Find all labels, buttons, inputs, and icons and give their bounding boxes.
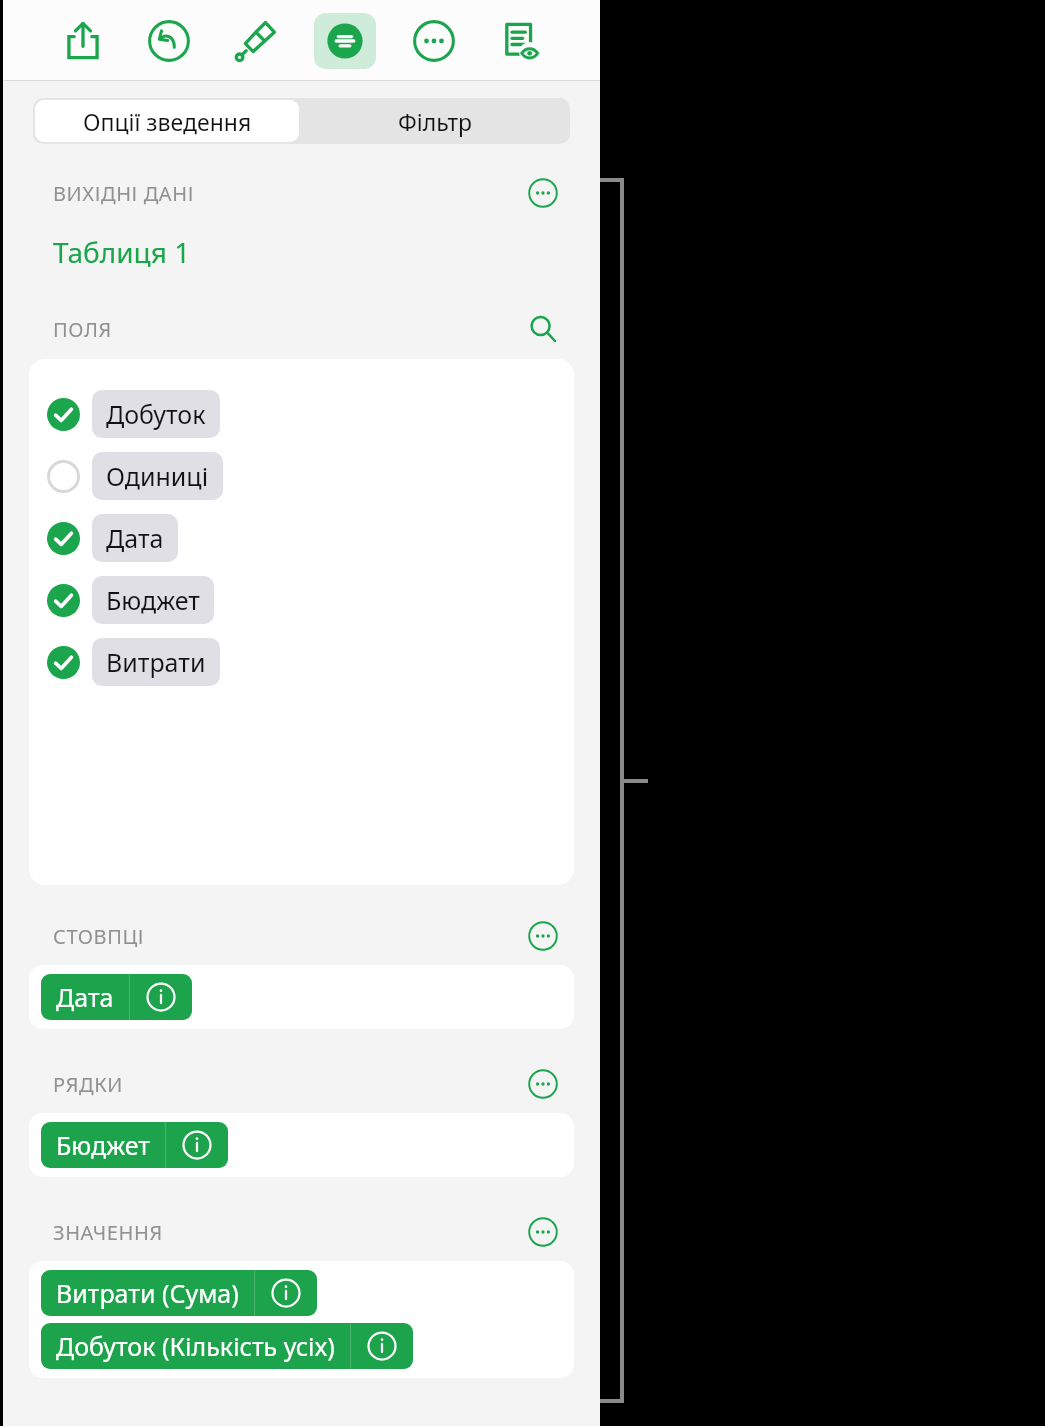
staticText: Дата	[106, 521, 164, 555]
button[interactable]: More options	[526, 176, 560, 210]
button[interactable]: Одиниці	[47, 445, 574, 507]
button[interactable]: Бюджет	[47, 569, 574, 631]
button[interactable]: More options	[526, 1215, 560, 1249]
staticText: Таблиця 1	[53, 233, 191, 271]
button[interactable]: Дата	[41, 974, 192, 1020]
staticText: Одиниці	[106, 459, 209, 493]
staticText: Добуток (Кількість усіх)	[56, 1329, 335, 1363]
staticText: Дата	[56, 980, 114, 1014]
button[interactable]: More options	[526, 919, 560, 953]
button[interactable]: More options	[526, 1067, 560, 1101]
button[interactable]: More	[406, 13, 462, 69]
staticText: ЗНАЧЕННЯ	[53, 1219, 163, 1246]
button[interactable]: Document	[492, 13, 548, 69]
staticText: Добуток	[106, 397, 206, 431]
button[interactable]: Organize	[314, 13, 376, 69]
button[interactable]: Search	[526, 312, 560, 346]
button[interactable]: Опції зведення	[35, 100, 299, 142]
button[interactable]: Format	[227, 13, 283, 69]
button[interactable]: Добуток	[47, 383, 574, 445]
staticText: ВИХІДНІ ДАНІ	[53, 180, 194, 207]
button[interactable]: Витрати (Сума)	[41, 1270, 317, 1316]
button[interactable]: Бюджет	[41, 1122, 228, 1168]
staticText: Опції зведення	[83, 106, 252, 137]
button[interactable]: Share	[55, 13, 111, 69]
staticText: ПОЛЯ	[53, 316, 112, 343]
staticText: Фільтр	[398, 106, 473, 137]
button[interactable]: Добуток (Кількість усіх)	[41, 1323, 413, 1369]
staticText: СТОВПЦІ	[53, 923, 145, 950]
button[interactable]: Фільтр	[301, 98, 570, 144]
staticText: Витрати	[106, 645, 206, 679]
button[interactable]: Дата	[47, 507, 574, 569]
staticText: РЯДКИ	[53, 1071, 124, 1098]
staticText: Бюджет	[106, 583, 200, 617]
staticText: Витрати (Сума)	[56, 1276, 239, 1310]
button[interactable]: Витрати	[47, 631, 574, 693]
button[interactable]: Таблиця 1	[53, 233, 191, 271]
button[interactable]: Undo	[141, 13, 197, 69]
staticText: Бюджет	[56, 1128, 150, 1162]
